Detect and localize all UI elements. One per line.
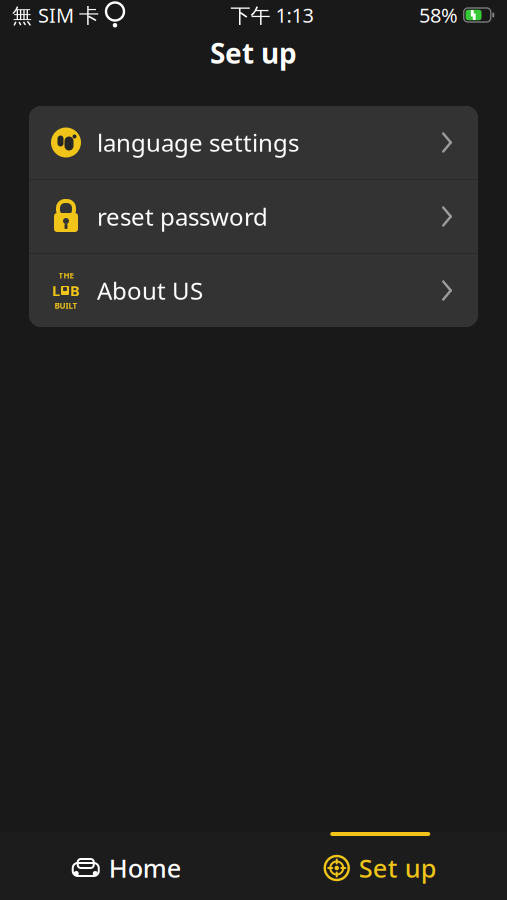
staticText: Home — [109, 851, 182, 885]
staticText: L — [52, 281, 60, 300]
button[interactable]: Home — [0, 832, 253, 900]
staticText: THE — [58, 270, 73, 281]
button[interactable]: THE — [29, 254, 478, 327]
staticText: BUILT — [54, 300, 77, 311]
staticText: 58% — [419, 2, 458, 28]
button[interactable]: reset password — [29, 180, 478, 253]
staticText: reset password — [97, 201, 268, 232]
button[interactable]: Set up — [253, 832, 507, 900]
staticText: 下午 1:13 — [230, 2, 313, 28]
staticText: Set up — [359, 851, 437, 885]
staticText: Set up — [210, 34, 297, 72]
staticText: B — [70, 281, 80, 300]
staticText: language settings — [97, 127, 299, 158]
staticText: 無 SIM 卡 — [12, 2, 99, 28]
button[interactable]: language settings — [29, 106, 478, 179]
staticText: About US — [97, 275, 203, 306]
